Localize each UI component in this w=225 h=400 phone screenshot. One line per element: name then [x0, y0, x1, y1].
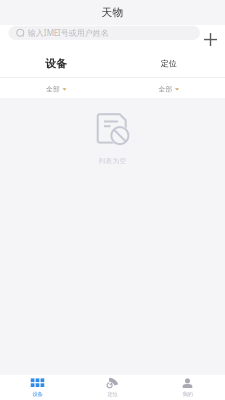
button[interactable]: 设备 — [0, 375, 75, 400]
button[interactable]: 全部 — [0, 78, 112, 101]
staticText: 天物 — [101, 6, 123, 19]
button[interactable]: 我的 — [150, 375, 225, 400]
button[interactable]: 添加设备 — [200, 30, 225, 49]
button[interactable]: 设备 — [0, 42, 112, 77]
staticText: 设备 — [45, 57, 67, 70]
button[interactable]: 全部 — [112, 78, 225, 101]
staticText: 列表为空 — [98, 157, 126, 165]
button[interactable]: 定位 — [75, 375, 150, 400]
staticText: 设备 — [32, 391, 42, 398]
staticText: 全部 — [158, 85, 172, 93]
button[interactable]: 定位 — [112, 42, 225, 77]
staticText: 定位 — [107, 391, 117, 398]
staticText: 我的 — [182, 391, 192, 398]
staticText: 输入IMEI号或用户姓名 — [28, 27, 109, 38]
staticText: 定位 — [161, 59, 177, 68]
staticText: 全部 — [46, 85, 60, 93]
